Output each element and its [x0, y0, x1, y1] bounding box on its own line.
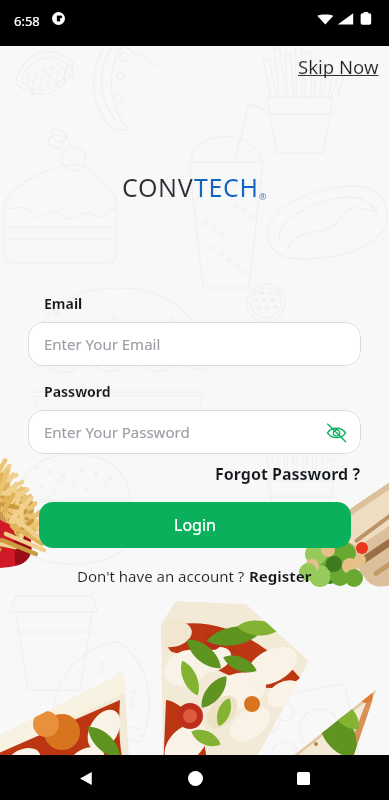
- staticText: Skip Now: [298, 54, 379, 79]
- staticText: Password: [44, 382, 111, 401]
- button[interactable]: Home: [173, 756, 217, 800]
- button[interactable]: Back: [64, 756, 108, 800]
- button[interactable]: Skip Now: [294, 50, 383, 83]
- button[interactable]: Login: [39, 502, 351, 548]
- staticText: TECH: [194, 170, 259, 204]
- staticText: 6:58: [14, 12, 40, 30]
- button[interactable]: Register: [249, 566, 312, 586]
- staticText: Login: [174, 514, 216, 536]
- staticText: Enter Your Password: [44, 422, 190, 442]
- button[interactable]: Forgot Password ?: [215, 463, 361, 485]
- staticText: Email: [44, 294, 83, 313]
- staticText: Don't have an account ?: [77, 566, 249, 586]
- button[interactable]: Enter Your Email: [28, 322, 361, 366]
- staticText: ®: [259, 190, 267, 202]
- staticText: Enter Your Email: [44, 334, 161, 354]
- staticText: CONV: [122, 170, 194, 204]
- button[interactable]: Show password: [323, 419, 349, 445]
- button[interactable]: Recent apps: [281, 756, 325, 800]
- button[interactable]: Enter Your Password: [28, 410, 361, 454]
- staticText: Forgot Password ?: [215, 463, 361, 485]
- staticText: Register: [249, 566, 312, 586]
